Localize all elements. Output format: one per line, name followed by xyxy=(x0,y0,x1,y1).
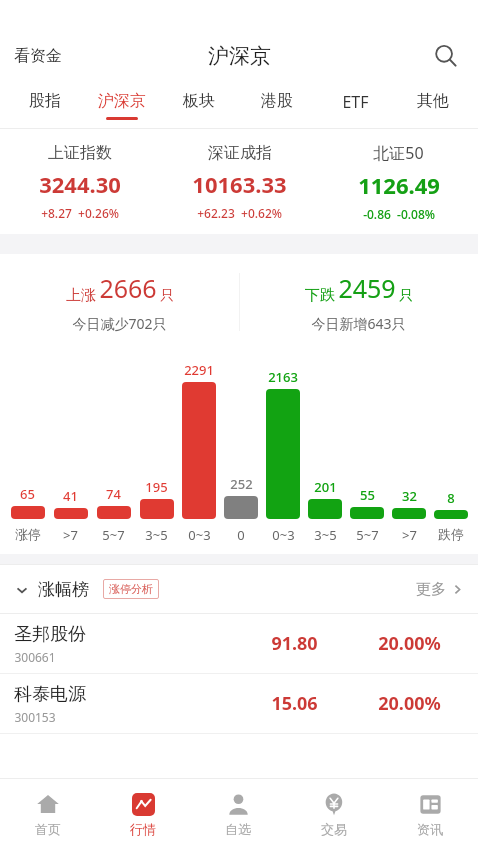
button[interactable]: 科泰电源 xyxy=(0,674,478,734)
staticText: 上证指数 xyxy=(48,143,112,163)
staticText: 看资金 xyxy=(14,46,62,66)
button[interactable]: 首页 xyxy=(0,778,95,850)
staticText: +8.27 xyxy=(41,205,72,221)
staticText: >7 xyxy=(402,526,417,544)
button[interactable]: 自选 xyxy=(190,778,286,850)
staticText: 65 xyxy=(20,485,35,503)
staticText: 0~3 xyxy=(272,526,295,544)
staticText: 41 xyxy=(63,487,78,505)
staticText: 自选 xyxy=(225,821,251,837)
staticText: 北证50 xyxy=(373,142,424,164)
staticText: 20.00% xyxy=(378,631,441,656)
button[interactable]: 41 xyxy=(49,487,92,519)
staticText: 2163 xyxy=(268,368,298,386)
staticText: 8 xyxy=(447,489,455,507)
button[interactable]: 沪深京 xyxy=(83,84,160,128)
staticText: 5~7 xyxy=(102,526,125,544)
button[interactable]: 港股 xyxy=(238,84,316,128)
staticText: 2459 xyxy=(338,271,396,305)
button[interactable]: 沪深京 xyxy=(202,37,277,75)
staticText: 上涨 xyxy=(66,286,96,305)
staticText: 252 xyxy=(230,475,253,493)
button[interactable]: 65 xyxy=(6,485,49,519)
staticText: 板块 xyxy=(183,91,215,111)
button[interactable]: 深证成指 xyxy=(160,129,319,234)
staticText: 2666 xyxy=(99,271,157,305)
button[interactable]: 行情 xyxy=(95,778,190,850)
button[interactable]: ETF xyxy=(316,84,394,128)
button[interactable]: 32 xyxy=(388,487,430,519)
button[interactable]: 8 xyxy=(430,489,472,519)
button[interactable]: Search xyxy=(428,38,464,74)
staticText: 201 xyxy=(314,478,337,496)
button[interactable]: 股指 xyxy=(6,84,83,128)
staticText: 300153 xyxy=(14,709,56,725)
button[interactable]: 北证50 xyxy=(319,129,478,234)
button[interactable]: 圣邦股份 xyxy=(0,614,478,674)
staticText: 1126.49 xyxy=(358,170,440,200)
button[interactable]: 2163 xyxy=(262,368,304,519)
staticText: 3~5 xyxy=(145,526,168,544)
staticText: +62.23 xyxy=(197,205,235,221)
button[interactable]: 195 xyxy=(135,478,178,519)
staticText: 10163.33 xyxy=(192,169,287,199)
staticText: 195 xyxy=(145,478,168,496)
staticText: 更多 xyxy=(416,580,446,599)
staticText: 74 xyxy=(106,485,121,503)
button[interactable]: 交易 xyxy=(286,778,382,850)
button[interactable]: 2291 xyxy=(178,361,220,519)
staticText: 首页 xyxy=(35,821,61,837)
button[interactable]: 涨停分析 xyxy=(103,579,159,599)
staticText: 资讯 xyxy=(417,821,443,837)
button[interactable]: 更多 xyxy=(416,576,464,603)
button[interactable]: 涨幅榜 xyxy=(14,575,89,604)
staticText: 圣邦股份 xyxy=(14,623,86,646)
button[interactable]: 74 xyxy=(92,485,135,519)
staticText: 3244.30 xyxy=(39,169,121,199)
button[interactable]: 板块 xyxy=(160,84,238,128)
staticText: 0~3 xyxy=(188,526,211,544)
staticText: +0.26% xyxy=(78,205,119,221)
staticText: 下跌 xyxy=(305,286,335,305)
button[interactable]: 252 xyxy=(220,475,262,519)
staticText: 涨停分析 xyxy=(109,582,153,596)
staticText: 跌停 xyxy=(438,526,464,542)
staticText: 5~7 xyxy=(356,526,379,544)
button[interactable]: 上证指数 xyxy=(0,129,160,234)
staticText: 300661 xyxy=(14,649,56,665)
staticText: +0.62% xyxy=(241,205,282,221)
staticText: 沪深京 xyxy=(98,91,146,111)
staticText: -0.86 xyxy=(363,206,391,222)
staticText: 20.00% xyxy=(378,691,441,716)
button[interactable]: 201 xyxy=(304,478,346,519)
staticText: 涨停 xyxy=(15,526,41,542)
staticText: 股指 xyxy=(29,91,61,111)
staticText: 港股 xyxy=(261,91,293,111)
staticText: 其他 xyxy=(417,91,449,111)
staticText: 2291 xyxy=(184,361,214,379)
button[interactable]: 上涨 xyxy=(0,254,239,349)
button[interactable]: 资讯 xyxy=(382,778,478,850)
staticText: ETF xyxy=(342,91,369,113)
staticText: 15.06 xyxy=(271,691,318,716)
staticText: 交易 xyxy=(321,821,347,837)
staticText: 沪深京 xyxy=(208,43,271,69)
staticText: 3~5 xyxy=(314,526,337,544)
button[interactable]: 其他 xyxy=(394,84,472,128)
staticText: 55 xyxy=(360,486,375,504)
staticText: >7 xyxy=(63,526,78,544)
staticText: 只 xyxy=(399,287,413,305)
staticText: 今日减少702只 xyxy=(72,314,167,333)
button[interactable]: 55 xyxy=(346,486,388,519)
button[interactable]: 看资金 xyxy=(10,40,66,72)
staticText: 32 xyxy=(402,487,417,505)
staticText: 只 xyxy=(160,287,174,305)
staticText: 今日新增643只 xyxy=(311,314,406,333)
staticText: 深证成指 xyxy=(208,143,272,163)
staticText: 科泰电源 xyxy=(14,683,86,706)
staticText: 0 xyxy=(237,526,245,544)
button[interactable]: 下跌 xyxy=(239,254,478,349)
staticText: 涨幅榜 xyxy=(38,579,89,600)
staticText: 91.80 xyxy=(271,631,318,656)
staticText: -0.08% xyxy=(397,206,435,222)
